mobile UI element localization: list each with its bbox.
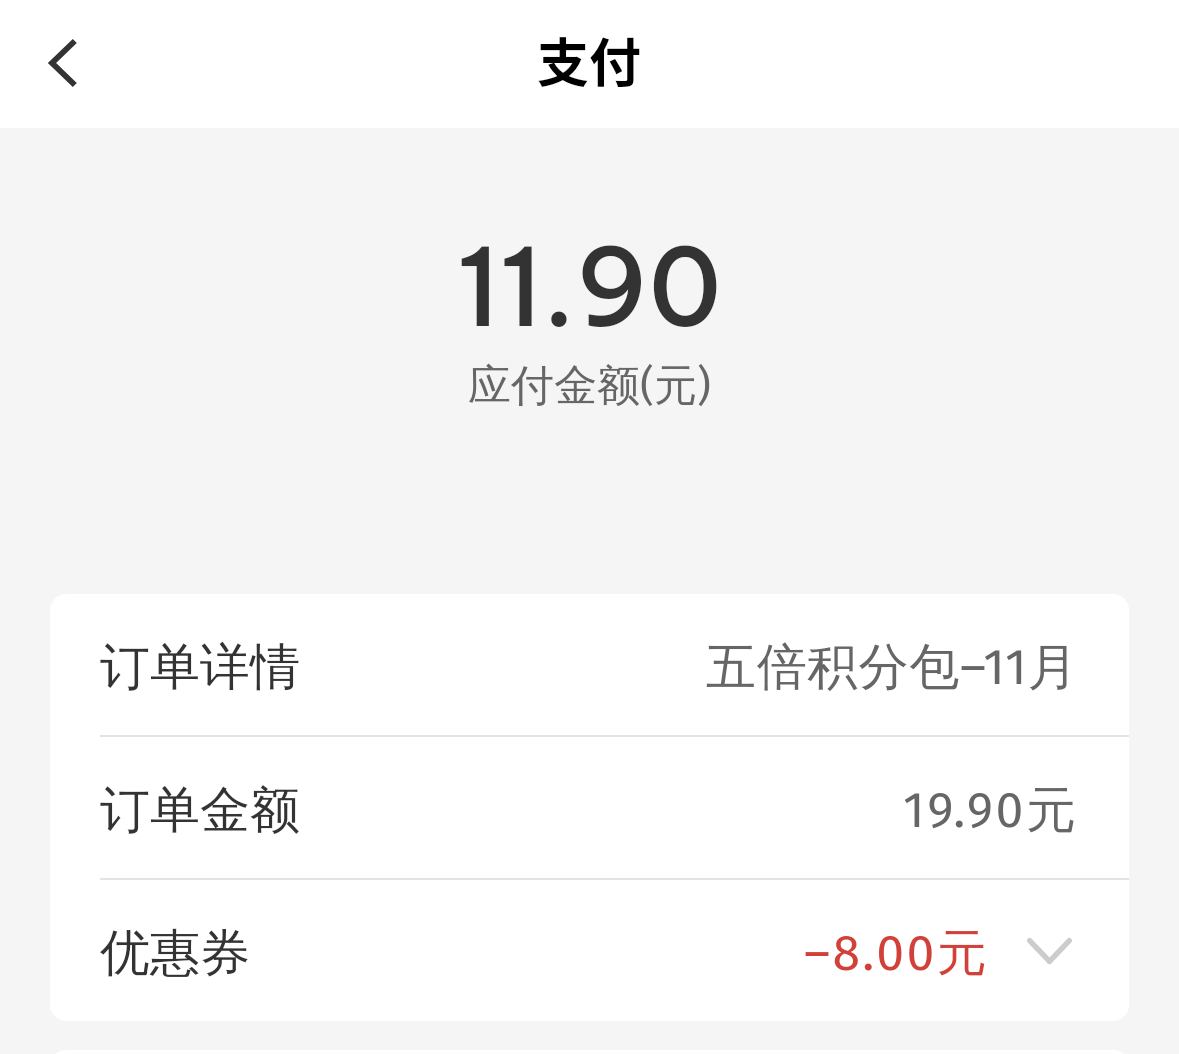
staticText: 订单详情: [100, 636, 300, 699]
staticText: 11.90: [0, 219, 1179, 354]
button[interactable]: Back: [17, 15, 113, 111]
staticText: 支付: [537, 22, 642, 97]
staticText: –8.00元: [804, 922, 990, 985]
staticText: 应付金额(元): [0, 359, 1179, 413]
button[interactable]: 订单金额: [50, 737, 1129, 878]
button[interactable]: 优惠券: [50, 880, 1129, 1021]
staticText: 优惠券: [100, 922, 250, 985]
staticText: 订单金额: [100, 779, 300, 842]
button[interactable]: 订单详情: [50, 594, 1129, 735]
staticText: 五倍积分包–11月: [706, 636, 1079, 699]
staticText: 19.90元: [903, 779, 1079, 842]
